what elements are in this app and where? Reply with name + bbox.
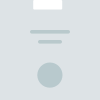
button[interactable]: Header	[33, 0, 62, 9]
button[interactable]: Start	[37, 62, 62, 88]
